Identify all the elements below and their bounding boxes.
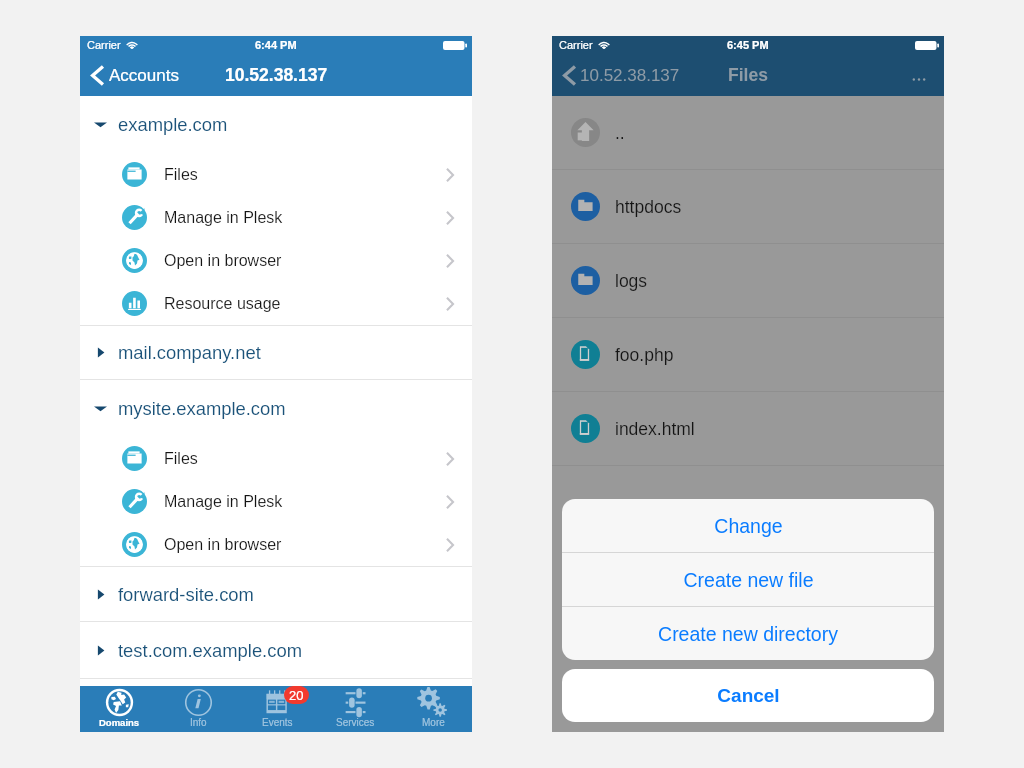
button[interactable]: test.com.example.com xyxy=(80,622,472,678)
staticText: mail.company.net xyxy=(118,342,261,363)
staticText: Carrier xyxy=(87,39,121,51)
button[interactable]: Change xyxy=(562,499,934,552)
button[interactable]: index.html xyxy=(552,392,944,465)
staticText: Accounts xyxy=(109,66,179,85)
staticText: forward-site.com xyxy=(118,584,254,605)
staticText: httpdocs xyxy=(615,197,682,217)
button[interactable]: More xyxy=(394,686,472,732)
button[interactable]: More options xyxy=(907,63,931,87)
staticText: .. xyxy=(615,123,625,143)
staticText: Files xyxy=(164,450,198,468)
staticText: 6:45 PM xyxy=(727,39,769,51)
button[interactable]: logs xyxy=(552,244,944,317)
staticText: Services xyxy=(336,717,375,728)
staticText: Open in browser xyxy=(164,252,282,270)
staticText: Create new directory xyxy=(658,623,838,645)
staticText: Events xyxy=(262,717,293,728)
button[interactable]: Files xyxy=(80,153,472,196)
staticText: logs xyxy=(615,271,648,291)
button[interactable]: foo.php xyxy=(552,318,944,391)
staticText: index.html xyxy=(615,419,695,439)
button[interactable]: httpdocs xyxy=(552,170,944,243)
button[interactable]: forward-site.com xyxy=(80,567,472,621)
button[interactable]: Cancel xyxy=(562,669,934,722)
staticText: 10.52.38.137 xyxy=(580,66,680,85)
staticText: Domains xyxy=(99,717,140,728)
staticText: Manage in Plesk xyxy=(164,209,283,227)
button[interactable]: 10.52.38.137 xyxy=(563,54,944,96)
button[interactable]: Files xyxy=(80,437,472,480)
button[interactable]: Info xyxy=(159,686,238,732)
staticText: Carrier xyxy=(559,39,593,51)
staticText: Change xyxy=(714,515,783,537)
button[interactable]: Manage in Plesk xyxy=(80,480,472,523)
button[interactable]: 20 xyxy=(238,686,316,732)
staticText: Info xyxy=(190,717,207,728)
staticText: Create new file xyxy=(683,569,814,591)
button[interactable]: Open in browser xyxy=(80,523,472,566)
staticText: Cancel xyxy=(717,685,780,706)
button[interactable]: Create new directory xyxy=(562,607,934,660)
button[interactable]: Create new file xyxy=(562,553,934,606)
staticText: test.com.example.com xyxy=(118,640,302,661)
button[interactable]: Resource usage xyxy=(80,282,472,325)
button[interactable]: .. xyxy=(552,96,944,169)
button[interactable]: Open in browser xyxy=(80,239,472,282)
button[interactable]: Domains xyxy=(80,686,159,732)
staticText: Resource usage xyxy=(164,295,281,313)
staticText: 20 xyxy=(289,688,304,703)
button[interactable]: mail.company.net xyxy=(80,326,472,379)
staticText: Open in browser xyxy=(164,536,282,554)
button[interactable]: mysite.example.com xyxy=(80,380,472,437)
staticText: 10.52.38.137 xyxy=(225,65,328,85)
staticText: mysite.example.com xyxy=(118,398,286,419)
staticText: foo.php xyxy=(615,345,674,365)
button[interactable]: Services xyxy=(316,686,394,732)
button[interactable]: example.com xyxy=(80,96,472,153)
staticText: Manage in Plesk xyxy=(164,493,283,511)
staticText: More xyxy=(422,717,445,728)
staticText: Files xyxy=(164,166,198,184)
staticText: Files xyxy=(728,65,768,85)
button[interactable]: Accounts xyxy=(91,54,472,96)
staticText: example.com xyxy=(118,114,228,135)
button[interactable]: Manage in Plesk xyxy=(80,196,472,239)
staticText: 6:44 PM xyxy=(255,39,297,51)
